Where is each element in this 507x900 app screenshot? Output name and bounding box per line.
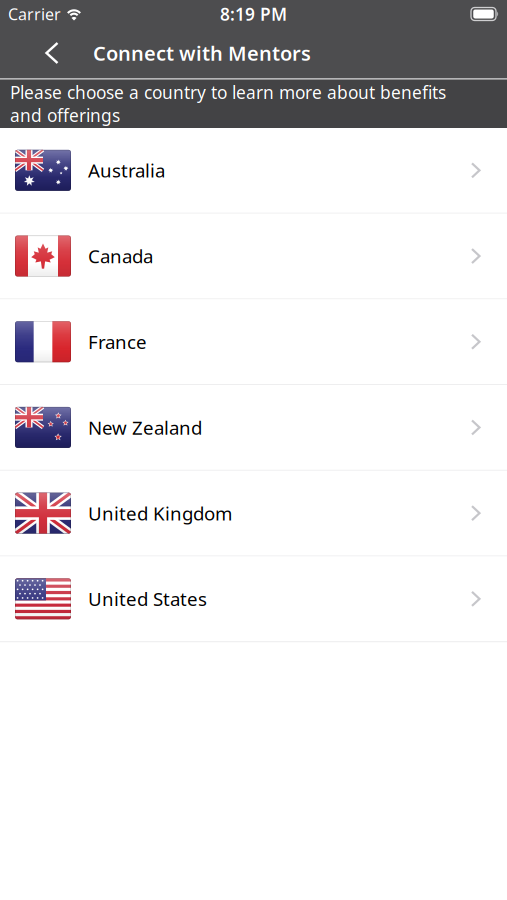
staticText: New Zealand <box>88 415 202 440</box>
button[interactable]: Back <box>0 28 69 78</box>
button[interactable]: Australia <box>0 128 507 214</box>
staticText: United Kingdom <box>88 501 232 526</box>
staticText: and offerings <box>10 104 120 127</box>
staticText: France <box>88 329 147 354</box>
staticText: Canada <box>88 244 153 268</box>
button[interactable]: New Zealand <box>0 385 507 471</box>
staticText: Please choose a country to learn more ab… <box>10 81 446 104</box>
button[interactable]: United Kingdom <box>0 471 507 556</box>
button[interactable]: United States <box>0 556 507 642</box>
staticText: 8:19 PM <box>220 2 287 25</box>
staticText: Connect with Mentors <box>93 40 311 66</box>
staticText: United States <box>88 586 207 611</box>
staticText: Australia <box>88 158 165 183</box>
button[interactable]: Canada <box>0 214 507 299</box>
staticText: Carrier <box>8 3 61 25</box>
button[interactable]: France <box>0 299 507 385</box>
